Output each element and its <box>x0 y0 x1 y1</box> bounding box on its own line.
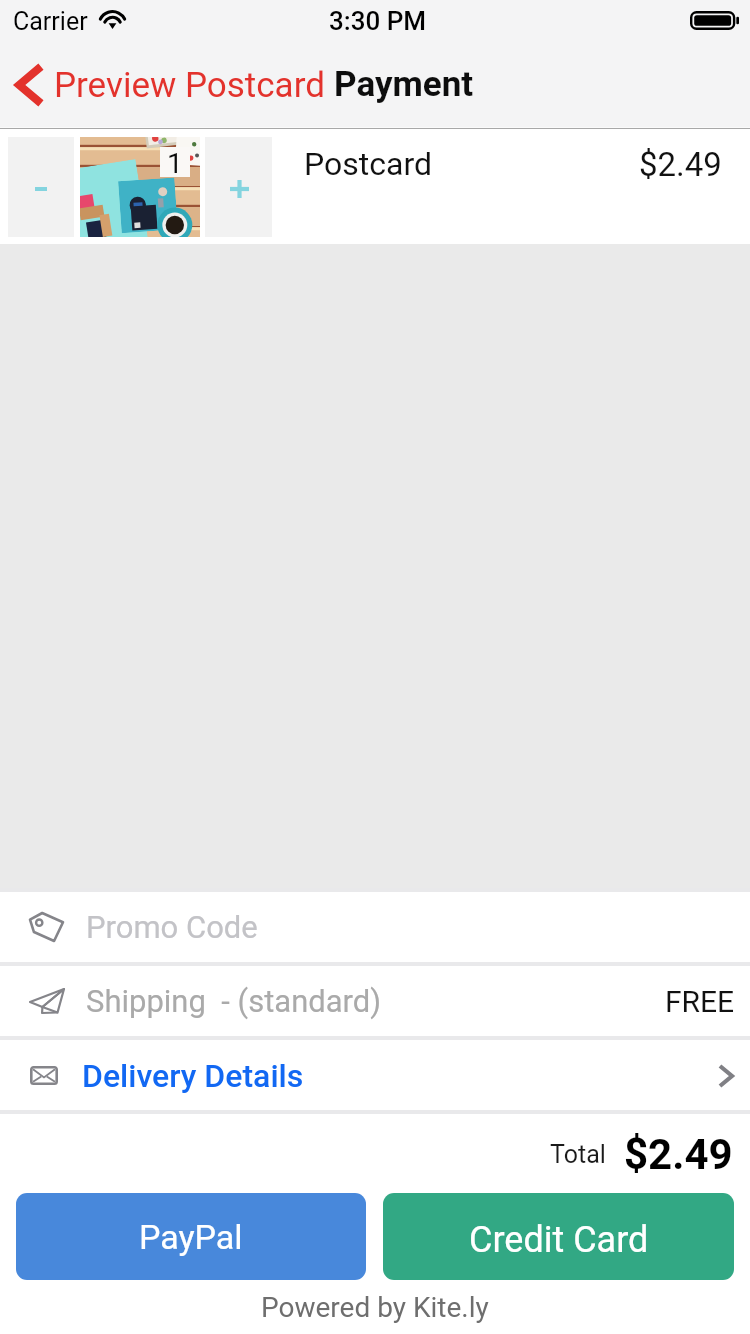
staticText: FREE <box>665 984 735 1019</box>
staticText: Powered by Kite.ly <box>261 1291 489 1324</box>
button[interactable]: Promo Code <box>0 892 750 962</box>
button[interactable]: Credit Card <box>383 1193 734 1280</box>
staticText: Preview Postcard <box>54 65 325 106</box>
staticText: Promo Code <box>86 909 258 945</box>
staticText: Total <box>550 1140 606 1169</box>
staticText: Postcard <box>304 145 432 183</box>
staticText: 3:30 PM <box>329 6 427 36</box>
staticText: Shipping - (standard) <box>86 983 382 1019</box>
staticText: PayPal <box>139 1217 243 1257</box>
other: Open delivery details <box>718 1064 734 1088</box>
button[interactable]: PayPal <box>16 1193 366 1280</box>
button[interactable]: Delivery Details <box>0 1040 750 1110</box>
button[interactable]: Shipping - (standard) <box>0 966 750 1036</box>
button[interactable]: Increase quantity <box>205 137 272 237</box>
staticText: Credit Card <box>469 1219 649 1261</box>
button[interactable]: Decrease quantity <box>8 137 74 237</box>
staticText: 1 <box>167 147 183 177</box>
staticText: $2.49 <box>624 1130 733 1179</box>
staticText: Carrier <box>13 7 88 36</box>
staticText: $2.49 <box>639 145 722 184</box>
staticText: Payment <box>334 64 474 105</box>
button[interactable]: Preview Postcard <box>0 40 330 129</box>
staticText: Delivery Details <box>82 1057 304 1095</box>
